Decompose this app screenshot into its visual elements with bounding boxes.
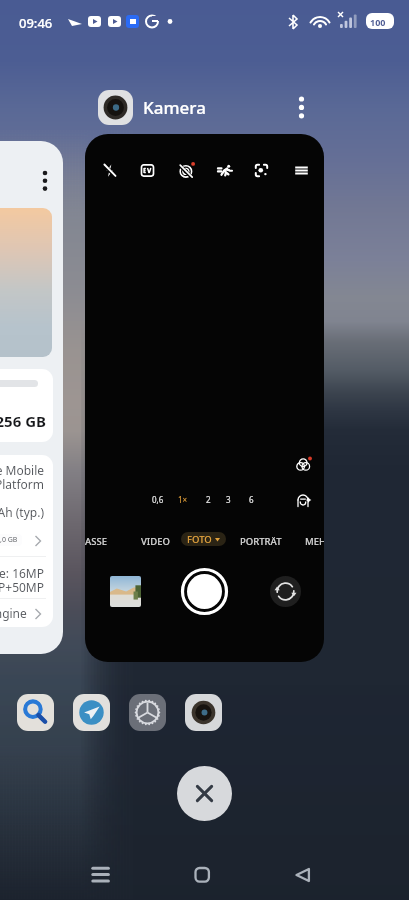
staticText: 2 (206, 494, 211, 505)
button[interactable]: Flash off (85, 134, 324, 662)
button[interactable]: AI scene (248, 157, 274, 183)
button[interactable]: Switch camera (270, 576, 301, 607)
button[interactable]: 1× (172, 492, 194, 506)
staticText: FOTO (187, 533, 212, 546)
staticText: Platform (0, 476, 44, 492)
staticText: Vorderseite: 16MP (0, 565, 44, 581)
button[interactable]: 6 (240, 492, 262, 506)
button[interactable]: Beauty (295, 492, 313, 510)
button[interactable]: Back (289, 858, 322, 891)
button[interactable]: FOTO (181, 532, 226, 546)
staticText: 50MP+50MP+50MP (0, 579, 44, 595)
staticText: PORTRÄT (240, 535, 282, 548)
button[interactable]: VIDEO (141, 535, 170, 548)
staticText: MEHR (305, 535, 324, 548)
staticText: 12,0 GB (0, 535, 18, 545)
staticText: KRASSE (85, 535, 107, 548)
button[interactable]: Home (188, 858, 221, 891)
staticText: 5800 mAh (typ.) (0, 504, 44, 520)
staticText: 6 (249, 494, 254, 505)
button[interactable]: Gallery (110, 576, 141, 607)
button[interactable]: Timer off (173, 157, 199, 183)
button[interactable]: 0,6 (147, 492, 169, 506)
button[interactable]: MEHR (305, 535, 324, 548)
button[interactable]: 3 (217, 492, 239, 506)
staticText: 3 (226, 494, 231, 505)
button[interactable]: PORTRÄT (240, 535, 282, 548)
button[interactable]: 128 GB / 256 GB (0, 141, 63, 654)
button[interactable]: Search (17, 694, 54, 731)
button[interactable]: Telegram (73, 694, 110, 731)
button[interactable]: Recents (84, 858, 117, 891)
staticText: 09:46 (19, 14, 53, 32)
button[interactable]: Flash off (96, 157, 122, 183)
button[interactable]: 2 (197, 492, 219, 506)
button[interactable]: Settings (129, 694, 166, 731)
button[interactable]: Close all (177, 766, 232, 821)
staticText: Snapdragon 8 Elite Mobile (0, 462, 44, 478)
button[interactable]: Motion capture (211, 157, 237, 183)
staticText: 0,6 (152, 494, 164, 505)
button[interactable]: Camera (185, 694, 222, 731)
button[interactable]: Filters (294, 455, 314, 475)
staticText: 1× (178, 494, 188, 505)
staticText: Kamera (143, 96, 206, 119)
staticText: 100 (370, 16, 386, 28)
button[interactable]: More options (290, 92, 318, 120)
button[interactable]: KRASSE (85, 535, 107, 548)
staticText: Display Engine (0, 605, 27, 621)
staticText: 128 GB / 256 GB (0, 411, 46, 431)
staticText: VIDEO (141, 535, 170, 548)
button[interactable]: Camera settings (288, 157, 314, 183)
button[interactable]: Exposure (134, 157, 160, 183)
button[interactable]: Shutter (181, 568, 228, 615)
